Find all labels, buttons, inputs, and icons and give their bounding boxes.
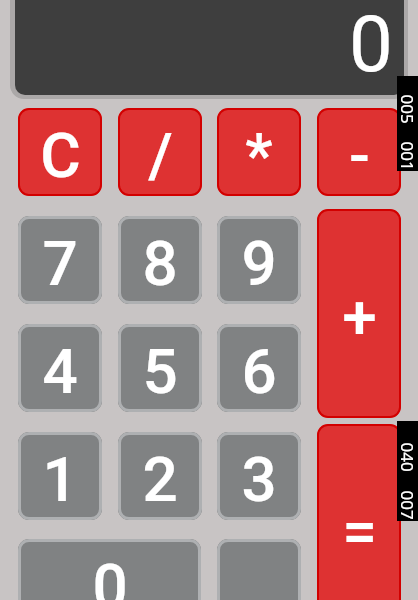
button[interactable]: 0: [18, 539, 201, 600]
staticText: =: [342, 495, 377, 568]
staticText: 7: [42, 227, 78, 300]
staticText: 0: [92, 550, 128, 600]
button[interactable]: +: [317, 209, 401, 418]
staticText: 1: [42, 443, 78, 516]
button[interactable]: -: [317, 108, 401, 196]
staticText: /: [148, 119, 173, 192]
button[interactable]: 1: [18, 432, 102, 520]
button[interactable]: 4: [18, 324, 102, 412]
staticText: 3: [241, 443, 277, 516]
staticText: 6: [241, 335, 277, 408]
staticText: C: [40, 119, 81, 192]
staticText: 007: [395, 490, 418, 520]
staticText: 0: [349, 0, 393, 90]
staticText: 2: [142, 443, 178, 516]
staticText: 001: [395, 141, 418, 171]
button[interactable]: Decimal point: [217, 539, 301, 600]
staticText: *: [245, 119, 273, 192]
button[interactable]: 6: [217, 324, 301, 412]
button[interactable]: 9: [217, 216, 301, 304]
staticText: 5: [142, 335, 178, 408]
button[interactable]: /: [118, 108, 202, 196]
button[interactable]: C: [18, 108, 102, 196]
button[interactable]: 2: [118, 432, 202, 520]
staticText: 005: [395, 94, 418, 124]
staticText: 9: [241, 227, 277, 300]
staticText: -: [349, 119, 370, 192]
staticText: +: [342, 280, 377, 353]
staticText: 8: [142, 227, 178, 300]
button[interactable]: 3: [217, 432, 301, 520]
staticText: 4: [42, 335, 78, 408]
staticText: 040: [395, 442, 418, 472]
button[interactable]: 8: [118, 216, 202, 304]
button[interactable]: =: [317, 424, 401, 600]
button[interactable]: 5: [118, 324, 202, 412]
button[interactable]: 7: [18, 216, 102, 304]
button[interactable]: *: [217, 108, 301, 196]
